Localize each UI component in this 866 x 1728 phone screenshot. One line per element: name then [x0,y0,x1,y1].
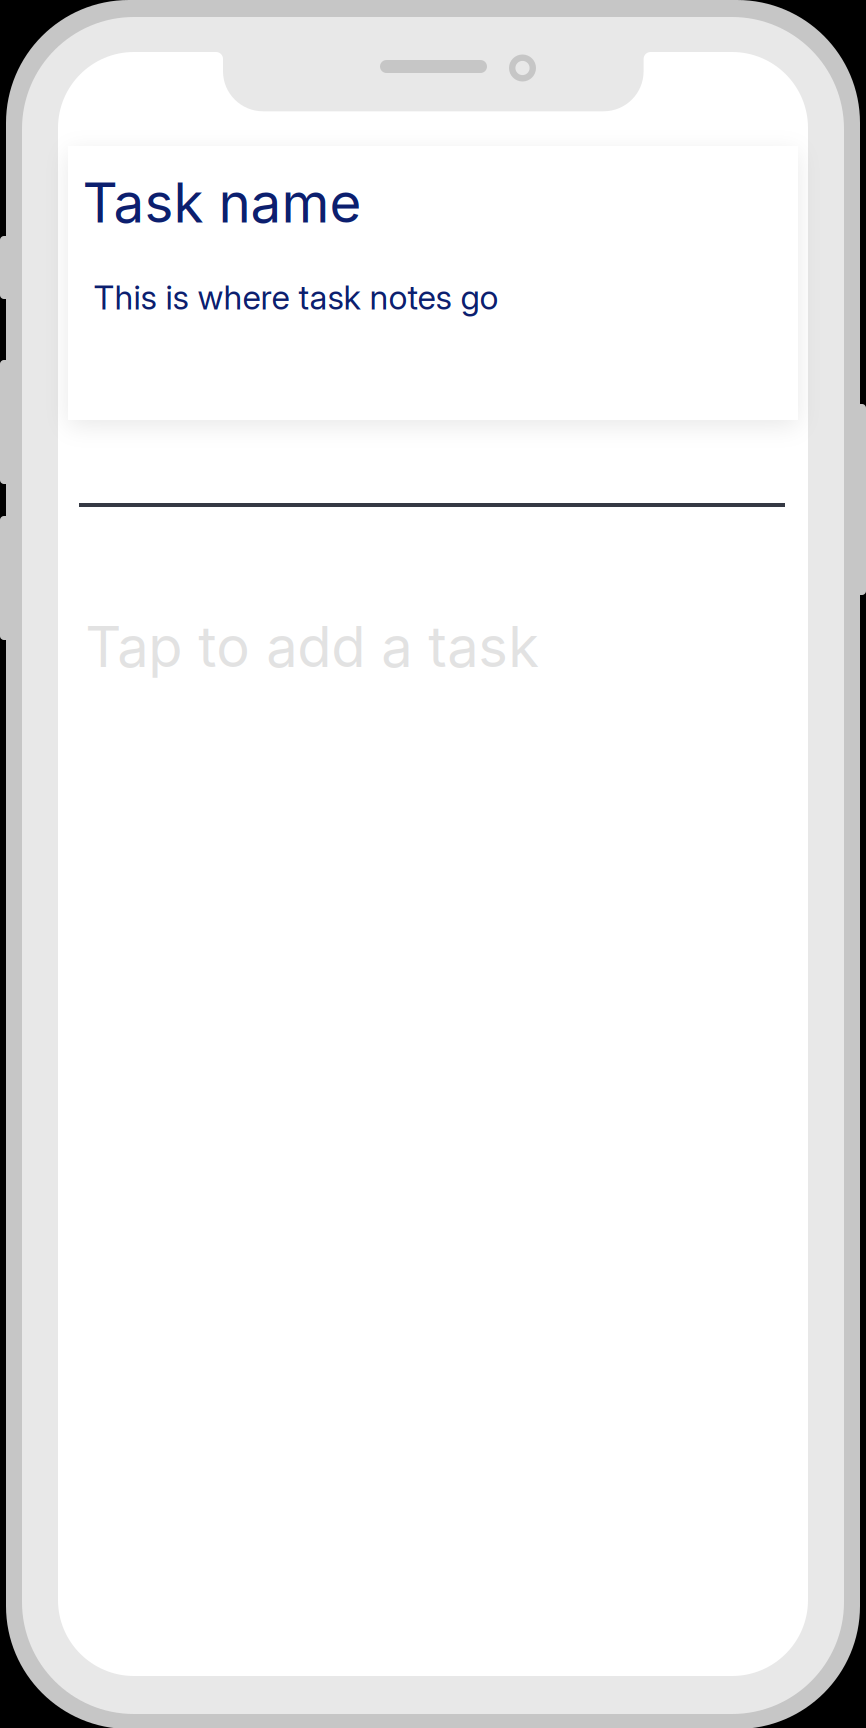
button[interactable]: Task name [0,0,866,1728]
staticText: Tap to add a task [85,613,539,681]
staticText: This is where task notes go [93,277,498,317]
button[interactable]: Tap to add a task [0,0,866,1728]
staticText: Task name [82,170,361,236]
